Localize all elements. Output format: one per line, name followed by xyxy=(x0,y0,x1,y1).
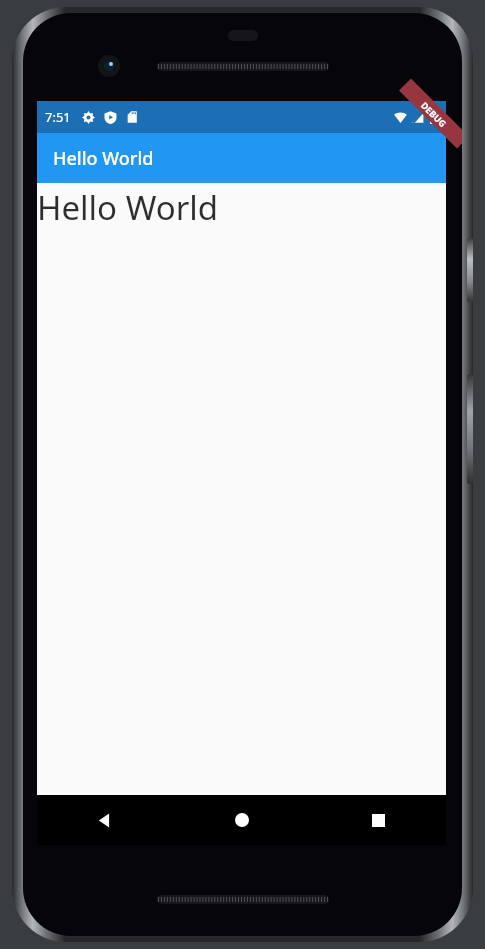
button[interactable]: Home xyxy=(174,795,310,845)
staticText: DEBUG xyxy=(419,99,449,129)
button[interactable]: Recent apps xyxy=(310,795,446,845)
staticText: Hello World xyxy=(53,146,154,171)
staticText: Hello World xyxy=(37,185,219,230)
button[interactable]: Back xyxy=(37,795,174,845)
staticText: 7:51 xyxy=(45,108,71,126)
